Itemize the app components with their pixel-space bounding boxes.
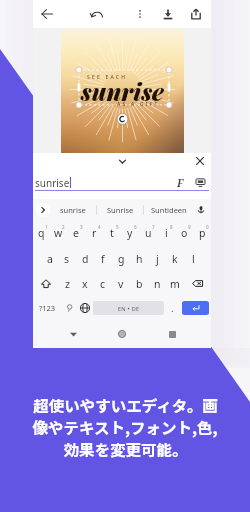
- staticText: ?123: [39, 303, 56, 313]
- button[interactable]: m: [166, 271, 184, 296]
- button[interactable]: y: [121, 220, 139, 246]
- button[interactable]: p: [193, 220, 211, 246]
- button[interactable]: g: [112, 246, 130, 271]
- button[interactable]: t: [103, 220, 121, 246]
- staticText: 超使いやすいエディタ。画: [33, 394, 218, 416]
- staticText: h: [136, 252, 143, 266]
- button[interactable]: z: [59, 271, 76, 296]
- button[interactable]: r: [85, 220, 103, 246]
- staticText: sunrise: [81, 75, 165, 107]
- staticText: i: [165, 226, 168, 240]
- staticText: d: [82, 252, 89, 266]
- button[interactable]: c: [94, 271, 112, 296]
- staticText: g: [118, 252, 125, 266]
- button[interactable]: Voice input: [194, 203, 208, 217]
- staticText: o: [181, 226, 188, 240]
- button[interactable]: EN • DE: [93, 301, 164, 315]
- staticText: c: [100, 277, 106, 291]
- staticText: sunrise: [35, 176, 70, 189]
- staticText: m: [170, 277, 180, 291]
- staticText: 6: [134, 224, 137, 230]
- staticText: q: [38, 226, 45, 240]
- staticText: EN • DE: [118, 305, 140, 312]
- staticText: Suntideen: [151, 205, 187, 215]
- button[interactable]: ?123: [33, 296, 61, 320]
- staticText: e: [73, 226, 79, 240]
- staticText: s: [64, 252, 70, 266]
- staticText: y: [127, 226, 133, 240]
- button[interactable]: i: [157, 220, 175, 246]
- button[interactable]: a: [41, 246, 58, 271]
- button[interactable]: Undo: [87, 4, 107, 24]
- staticText: k: [172, 252, 178, 266]
- staticText: Sunrise: [107, 205, 134, 215]
- button[interactable]: Change language: [77, 296, 93, 320]
- button[interactable]: n: [148, 271, 166, 296]
- staticText: 8: [170, 224, 173, 230]
- staticText: F: [177, 176, 184, 189]
- button[interactable]: j: [148, 246, 166, 271]
- staticText: b: [136, 277, 143, 291]
- staticText: a: [47, 252, 53, 266]
- staticText: w: [54, 226, 63, 240]
- button[interactable]: h: [130, 246, 148, 271]
- button[interactable]: u: [139, 220, 157, 246]
- staticText: j: [156, 252, 159, 266]
- button[interactable]: o: [175, 220, 193, 246]
- button[interactable]: Font: [173, 176, 187, 189]
- button[interactable]: Close: [192, 153, 208, 169]
- button[interactable]: e: [67, 220, 85, 246]
- button[interactable]: v: [112, 271, 130, 296]
- button[interactable]: Back: [63, 324, 83, 344]
- button[interactable]: Share: [186, 4, 206, 24]
- button[interactable]: l: [184, 246, 202, 271]
- button[interactable]: Home: [112, 324, 132, 344]
- button[interactable]: Emoji: [61, 296, 77, 320]
- button[interactable]: Recent apps: [162, 324, 182, 344]
- button[interactable]: Backspace: [184, 271, 211, 296]
- staticText: 4: [98, 224, 101, 230]
- button[interactable]: Suntideen: [149, 202, 189, 218]
- button[interactable]: d: [76, 246, 94, 271]
- staticText: SEE EACH: [87, 74, 128, 81]
- button[interactable]: q: [33, 220, 50, 246]
- button[interactable]: x: [76, 271, 94, 296]
- staticText: .: [171, 302, 174, 314]
- staticText: AS A GIFT: [117, 101, 160, 108]
- staticText: r: [92, 226, 97, 240]
- staticText: sunrise: [60, 205, 86, 215]
- staticText: x: [82, 277, 88, 291]
- button[interactable]: Download: [158, 4, 178, 24]
- button[interactable]: Enter: [182, 301, 209, 315]
- staticText: 像やテキスト,フォント,色,: [32, 416, 218, 438]
- staticText: 7: [152, 224, 155, 230]
- button[interactable]: f: [94, 246, 112, 271]
- staticText: 0: [206, 224, 209, 230]
- button[interactable]: Expand suggestions: [36, 203, 50, 217]
- staticText: l: [192, 252, 195, 266]
- staticText: 9: [188, 224, 191, 230]
- button[interactable]: .: [164, 296, 180, 320]
- staticText: 効果を変更可能。: [63, 438, 188, 460]
- staticText: f: [101, 252, 105, 266]
- button[interactable]: w: [50, 220, 67, 246]
- button[interactable]: Back: [37, 4, 57, 24]
- button[interactable]: Keyboard: [193, 176, 207, 189]
- staticText: z: [65, 277, 70, 291]
- staticText: 3: [80, 224, 83, 230]
- staticText: v: [118, 277, 124, 291]
- button[interactable]: More options: [130, 4, 150, 24]
- staticText: 1: [45, 224, 48, 230]
- staticText: p: [199, 226, 206, 240]
- button[interactable]: Collapse panel: [115, 154, 129, 168]
- staticText: 5: [116, 224, 119, 230]
- staticText: 2: [62, 224, 65, 230]
- button[interactable]: k: [166, 246, 184, 271]
- button[interactable]: Shift: [33, 271, 59, 296]
- staticText: u: [145, 226, 152, 240]
- button[interactable]: Sunrise: [105, 202, 136, 218]
- button[interactable]: s: [58, 246, 76, 271]
- button[interactable]: b: [130, 271, 148, 296]
- button[interactable]: sunrise: [58, 202, 88, 218]
- staticText: n: [154, 277, 161, 291]
